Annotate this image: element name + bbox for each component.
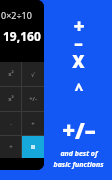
staticText: ^ <box>75 79 83 99</box>
button[interactable]: + <box>22 112 44 135</box>
staticText: and best of <box>60 149 98 159</box>
staticText: X <box>72 50 85 73</box>
button[interactable]: +/- <box>22 87 44 111</box>
staticText: x² <box>8 70 14 78</box>
staticText: x³ <box>8 95 14 103</box>
staticText: 19,160 <box>3 28 41 44</box>
staticText: √ <box>31 71 35 78</box>
staticText: + <box>31 120 35 128</box>
button[interactable]: √ <box>22 62 44 86</box>
staticText: – <box>74 32 83 55</box>
staticText: basic functions <box>53 160 104 170</box>
staticText: · <box>10 120 12 128</box>
staticText: + <box>9 143 13 151</box>
staticText: +/– <box>62 115 96 145</box>
staticText: 0×2÷10 <box>1 9 32 21</box>
staticText: +/- <box>29 95 37 103</box>
button[interactable]: Equals <box>22 136 44 158</box>
button[interactable]: x² <box>0 62 21 86</box>
button[interactable]: x³ <box>0 87 21 111</box>
button[interactable]: + <box>0 136 21 158</box>
staticText: + <box>73 13 85 39</box>
